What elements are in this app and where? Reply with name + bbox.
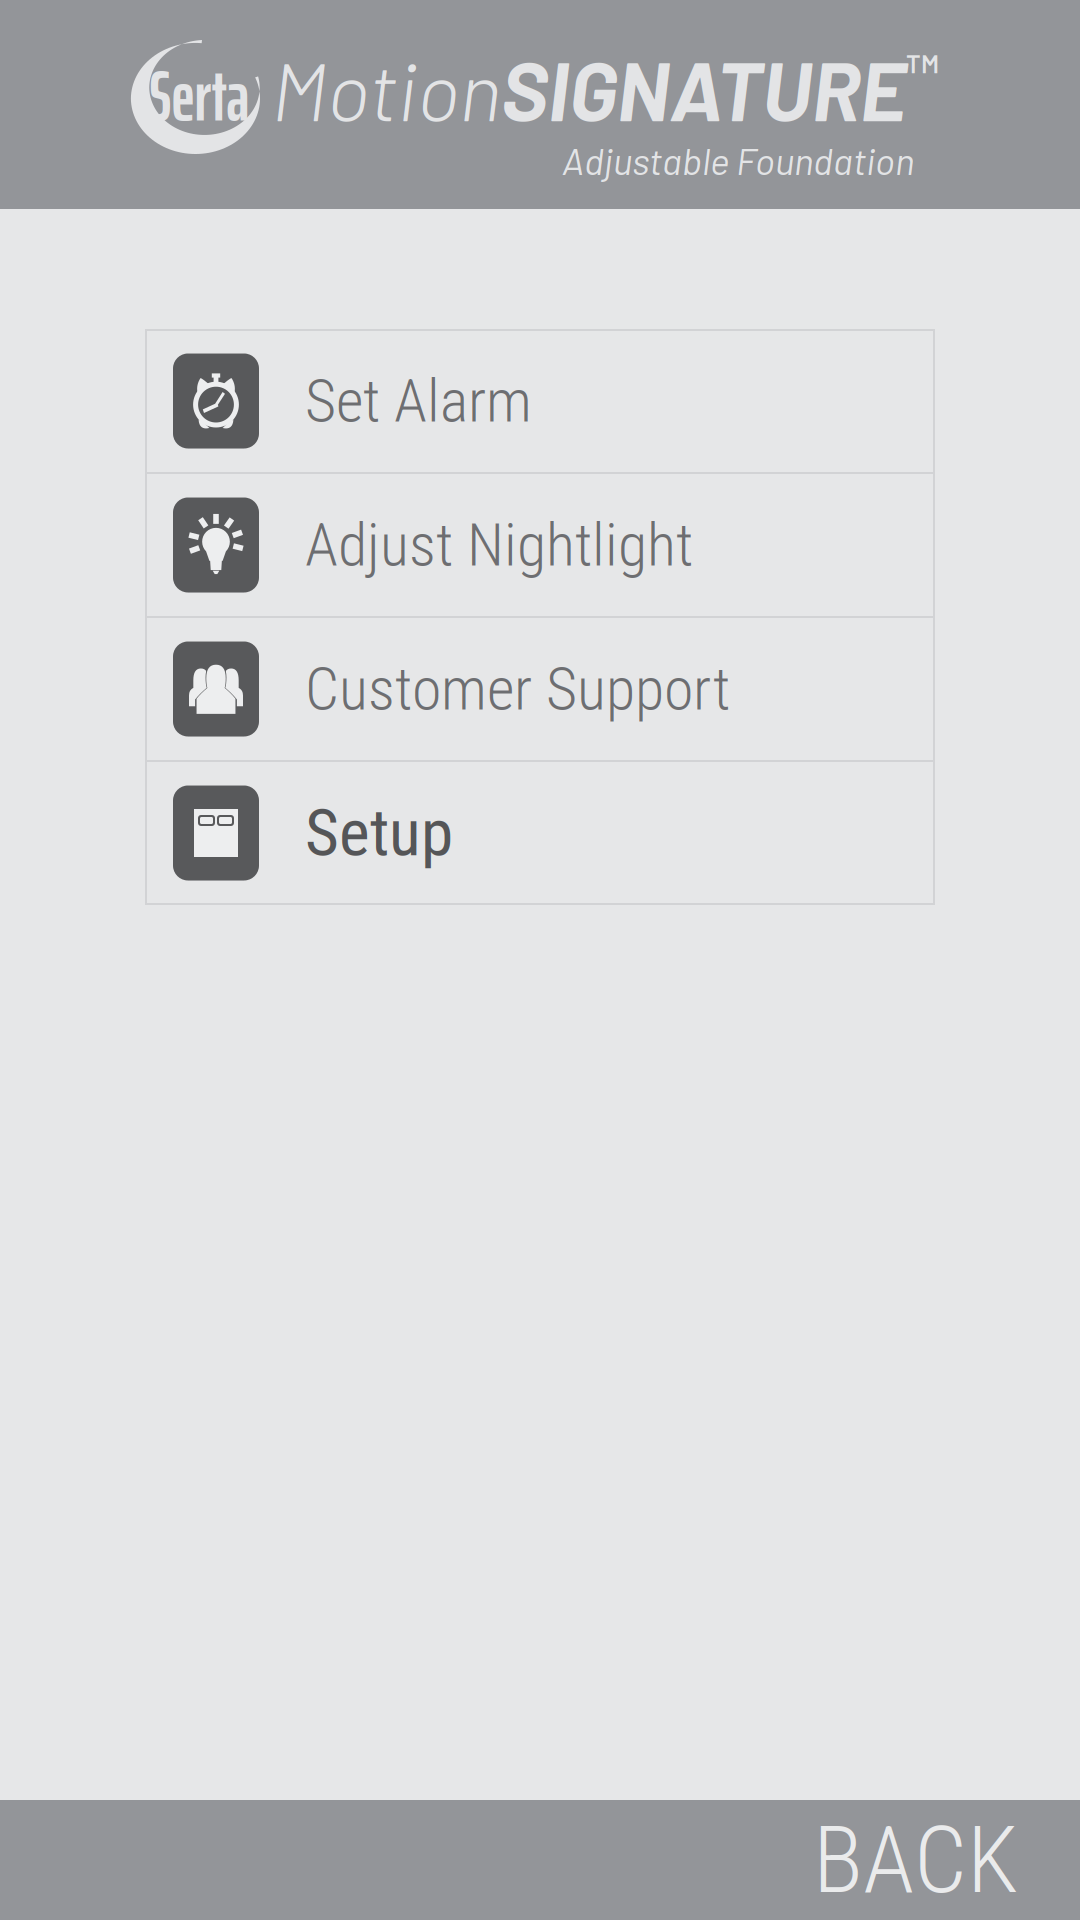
button[interactable]: Set Alarm xyxy=(146,330,934,472)
staticText: Serta xyxy=(149,39,249,152)
button[interactable]: Adjust Nightlight xyxy=(146,474,934,616)
staticText: Adjust Nightlight xyxy=(305,510,693,580)
staticText: Setup xyxy=(305,795,453,871)
staticText: TM xyxy=(906,48,939,78)
staticText: Customer Support xyxy=(305,654,730,724)
staticText: BACK xyxy=(813,1805,1018,1915)
staticText: SIGNATURE xyxy=(501,40,906,138)
staticText: Motion xyxy=(271,40,501,138)
staticText: Adjustable Foundation xyxy=(562,138,915,182)
staticText: Set Alarm xyxy=(305,366,532,436)
button[interactable]: Setup xyxy=(146,762,934,904)
button[interactable]: Customer Support xyxy=(146,618,934,760)
button[interactable]: BACK xyxy=(813,1791,1080,1920)
